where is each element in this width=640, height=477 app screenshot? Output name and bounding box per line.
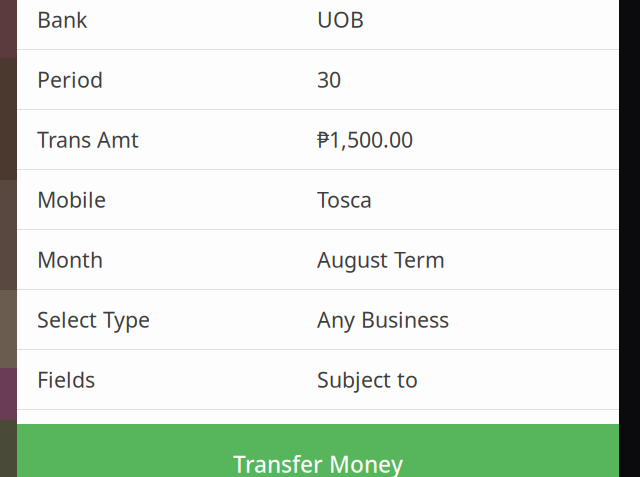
staticText: Any Business <box>317 305 449 334</box>
staticText: August Term <box>317 245 445 274</box>
button[interactable]: Period <box>17 50 619 110</box>
button[interactable]: Select Type <box>17 290 619 350</box>
button[interactable]: Fields <box>17 350 619 410</box>
staticText: Tosca <box>317 185 372 214</box>
staticText: Bank <box>37 5 87 34</box>
staticText: Mobile <box>37 185 106 214</box>
button[interactable]: Month <box>17 230 619 290</box>
staticText: Period <box>37 65 103 94</box>
staticText: Select Type <box>37 305 150 334</box>
staticText: Month <box>37 245 103 274</box>
staticText: Subject to <box>317 365 418 394</box>
staticText: Transfer Money <box>233 449 403 477</box>
staticText: Fields <box>37 365 95 394</box>
staticText: ₱1,500.00 <box>317 125 413 154</box>
button[interactable]: Bank <box>17 0 619 50</box>
staticText: Trans Amt <box>37 125 139 154</box>
button[interactable]: Trans Amt <box>17 110 619 170</box>
button[interactable]: Transfer Money <box>17 424 619 477</box>
button[interactable]: Mobile <box>17 170 619 230</box>
staticText: 30 <box>317 65 341 94</box>
staticText: UOB <box>317 5 364 34</box>
